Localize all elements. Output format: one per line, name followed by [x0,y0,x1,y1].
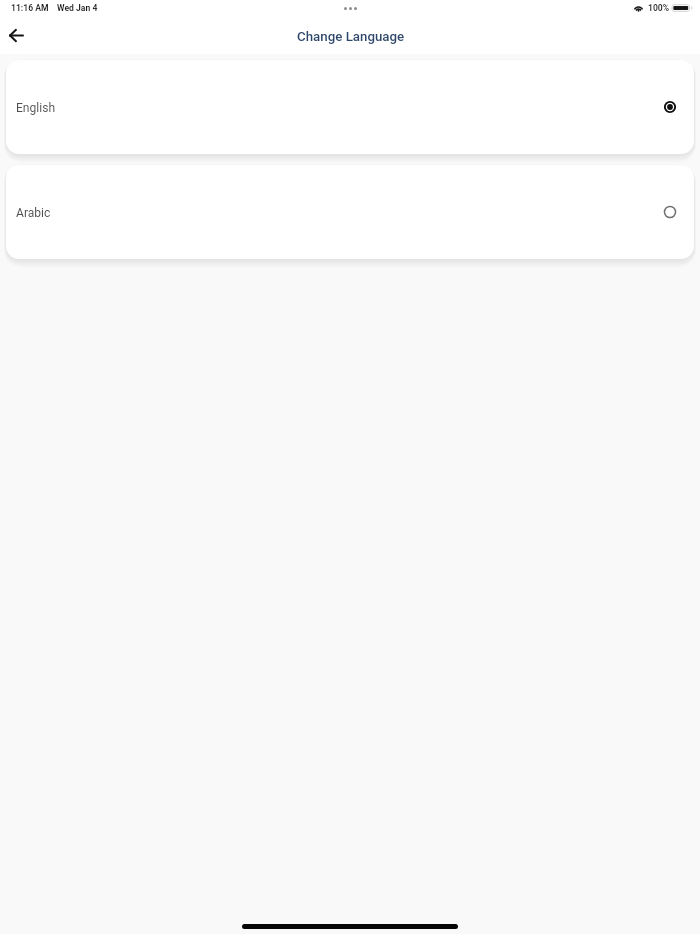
staticText: Change Language [297,29,405,45]
staticText: 100% [648,3,670,13]
button[interactable]: English [6,60,694,154]
staticText: 11:16 AM [11,3,49,13]
staticText: Arabic [16,206,51,220]
button[interactable]: Select Arabic [659,201,681,223]
staticText: English [16,101,56,115]
staticText: Wed Jan 4 [57,3,98,13]
button[interactable]: Arabic [6,165,694,259]
button[interactable]: English selected [659,96,681,118]
button[interactable]: Back [0,17,34,54]
